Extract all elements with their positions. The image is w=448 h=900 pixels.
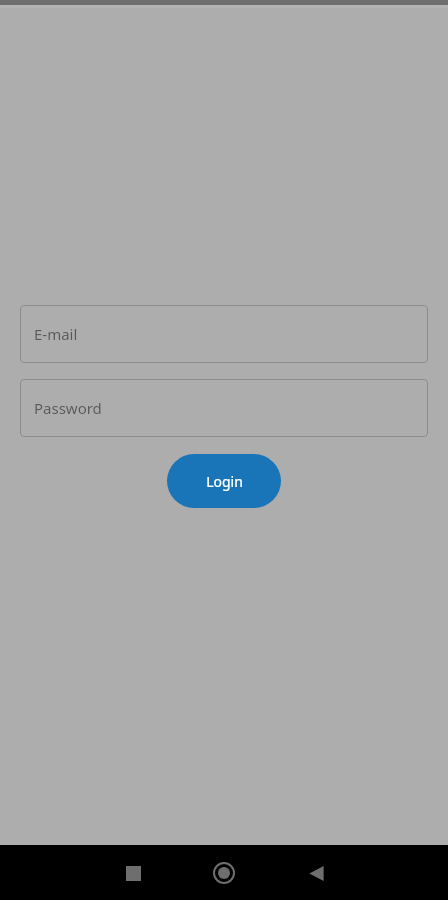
button[interactable]: E-mail: [20, 305, 428, 363]
button[interactable]: Login: [167, 454, 281, 508]
button[interactable]: Back: [296, 853, 336, 893]
button[interactable]: Recent apps: [113, 853, 153, 893]
staticText: Password: [34, 398, 102, 418]
button[interactable]: Home: [204, 853, 244, 893]
button[interactable]: Password: [20, 379, 428, 437]
staticText: Login: [206, 472, 243, 491]
staticText: E-mail: [34, 324, 78, 344]
